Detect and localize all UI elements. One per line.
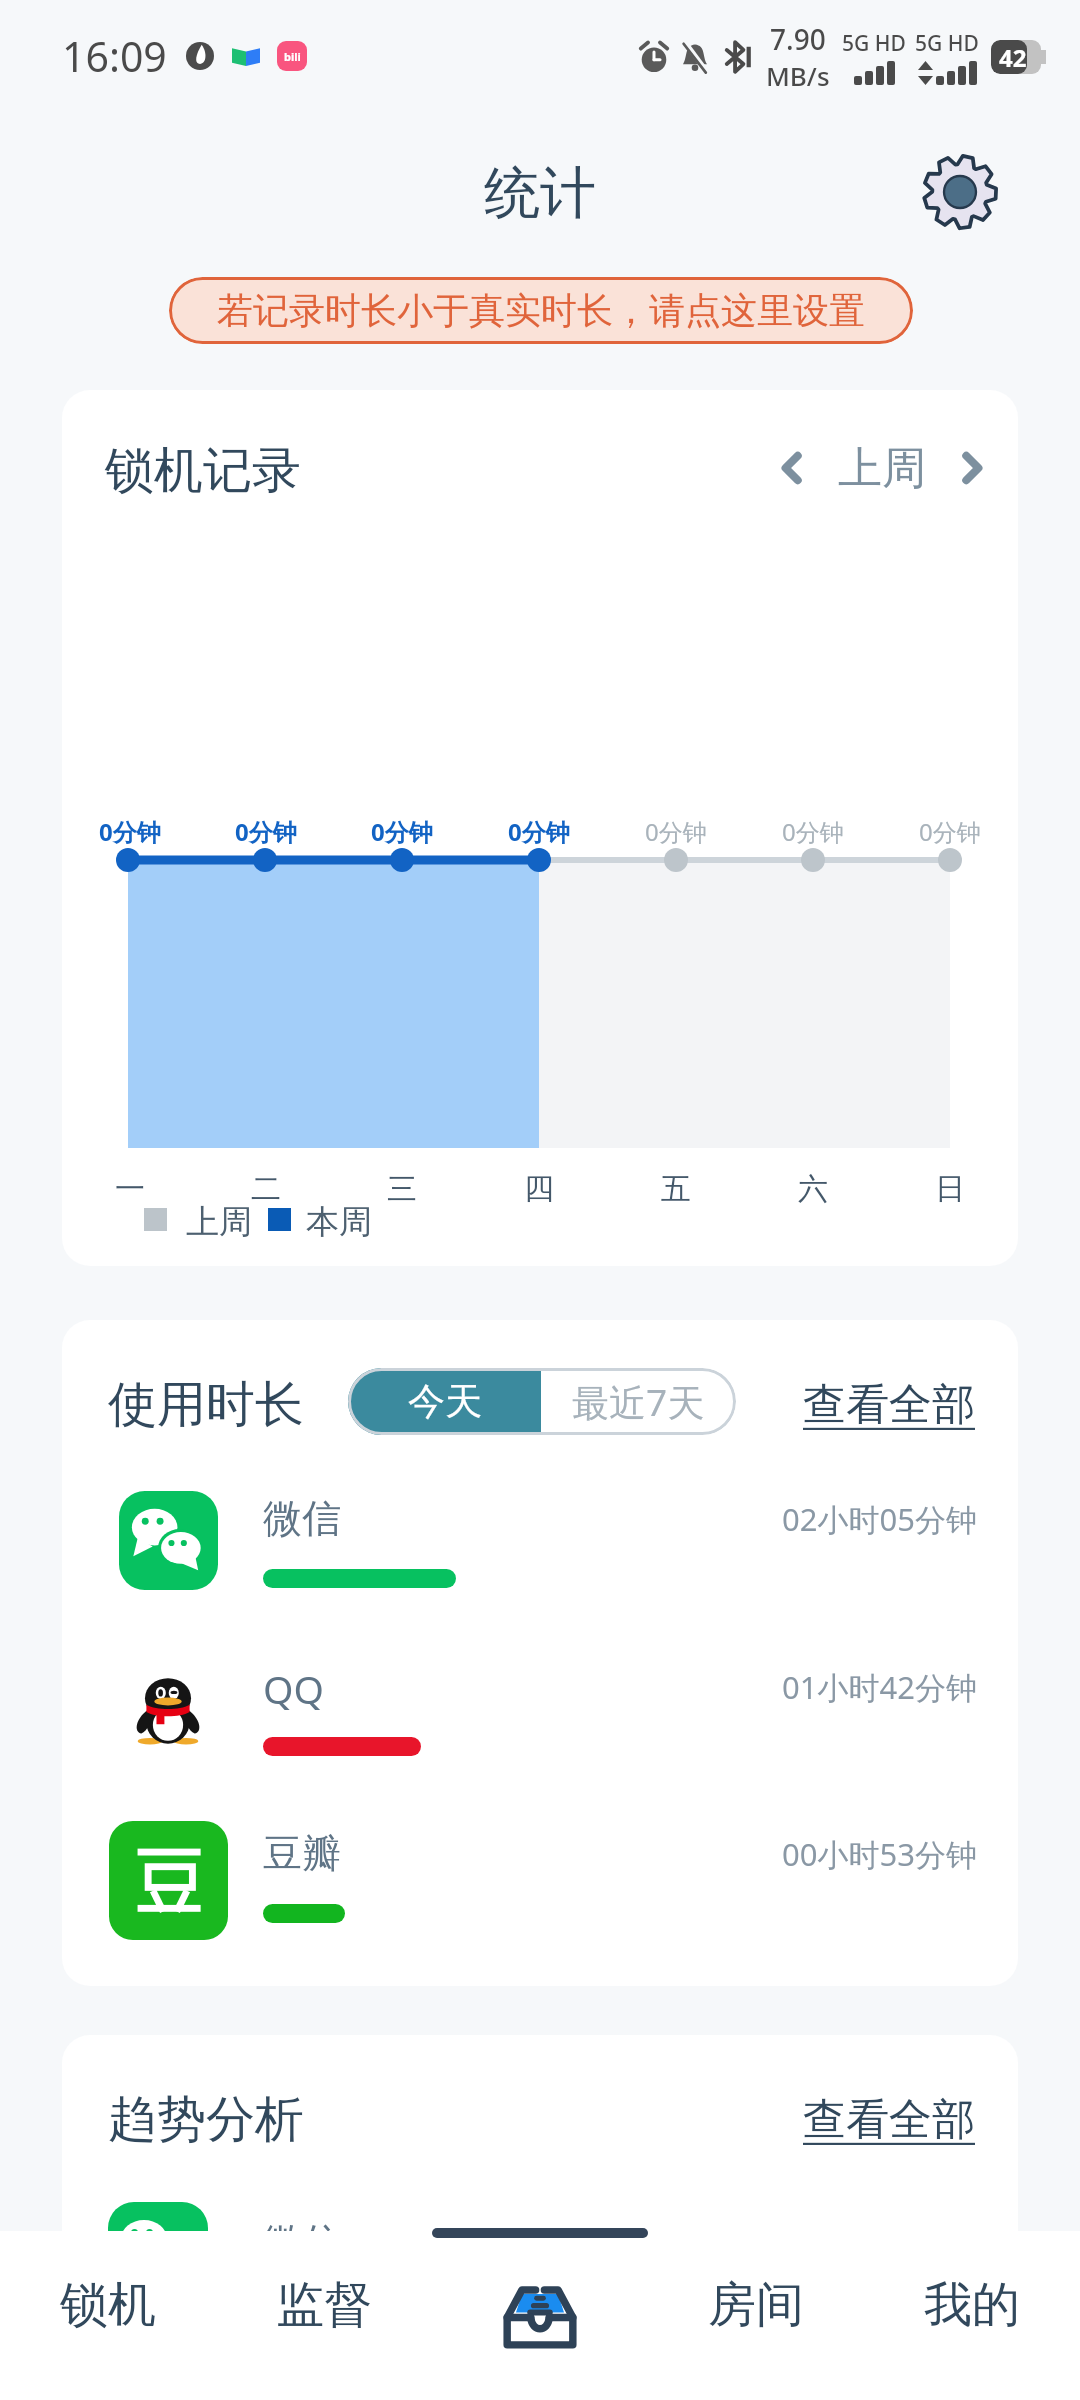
- button[interactable]: 上周: [774, 440, 990, 496]
- staticText: 0分钟: [235, 815, 297, 848]
- button[interactable]: 若记录时长小于真实时长，请点这里设置: [169, 277, 913, 344]
- staticText: 查看全部: [803, 1378, 975, 1432]
- staticText: 本周: [306, 1201, 372, 1237]
- staticText: bili: [284, 49, 301, 64]
- staticText: 六: [798, 1170, 828, 1208]
- staticText: 房间: [708, 2275, 804, 2335]
- staticText: 趋势分析: [108, 2089, 304, 2151]
- staticText: 0分钟: [508, 815, 570, 848]
- staticText: 00小时53分钟: [782, 1833, 977, 1875]
- staticText: 上周: [838, 441, 926, 496]
- staticText: 0分钟: [99, 815, 161, 848]
- staticText: 监督: [276, 2275, 372, 2335]
- button[interactable]: 查看全部: [803, 1378, 975, 1432]
- staticText: 0分钟: [782, 815, 844, 848]
- staticText: 三: [387, 1170, 417, 1208]
- button[interactable]: 锁机: [0, 2231, 216, 2379]
- staticText: 0分钟: [371, 815, 433, 848]
- button[interactable]: 豆瓣: [62, 1813, 1018, 1973]
- staticText: 5G HD: [842, 29, 906, 58]
- staticText: 16:09: [62, 28, 167, 84]
- staticText: 5G HD: [915, 29, 979, 58]
- staticText: 7.90: [770, 20, 826, 58]
- staticText: 42: [999, 41, 1027, 74]
- staticText: 二: [251, 1170, 281, 1208]
- staticText: 五: [661, 1170, 691, 1208]
- staticText: 微信: [263, 2218, 341, 2267]
- staticText: 四: [524, 1170, 554, 1208]
- button[interactable]: 查看全部: [803, 2093, 975, 2147]
- button[interactable]: 房间: [648, 2231, 864, 2379]
- staticText: MB/s: [766, 58, 830, 93]
- button[interactable]: 我的: [864, 2231, 1080, 2379]
- staticText: 日: [935, 1170, 965, 1208]
- button[interactable]: 今天: [348, 1368, 541, 1435]
- button[interactable]: QQ: [62, 1646, 1018, 1806]
- staticText: 微信: [263, 1494, 341, 1543]
- staticText: 若记录时长小于真实时长，请点这里设置: [217, 288, 865, 333]
- staticText: 锁机记录: [105, 440, 301, 502]
- staticText: 0分钟: [919, 815, 981, 848]
- button[interactable]: 监督: [216, 2231, 432, 2379]
- button[interactable]: 最近7天: [541, 1368, 736, 1435]
- staticText: 一: [115, 1170, 145, 1208]
- staticText: 使用时长: [108, 1374, 304, 1436]
- staticText: 我的: [924, 2275, 1020, 2335]
- staticText: 豆瓣: [263, 1829, 341, 1878]
- staticText: 今天: [408, 1378, 482, 1425]
- button[interactable]: 微信: [62, 1478, 1018, 1638]
- button[interactable]: Settings: [900, 132, 1020, 252]
- staticText: 锁机: [60, 2275, 156, 2335]
- button[interactable]: Records: [432, 2231, 648, 2379]
- staticText: 上周: [186, 1201, 252, 1237]
- staticText: 0分钟: [645, 815, 707, 848]
- staticText: 01小时42分钟: [782, 1666, 977, 1708]
- staticText: 02小时05分钟: [782, 1498, 977, 1540]
- staticText: 查看全部: [803, 2093, 975, 2147]
- staticText: 统计: [484, 158, 596, 229]
- staticText: QQ: [263, 1662, 324, 1715]
- staticText: 最近7天: [572, 1376, 705, 1427]
